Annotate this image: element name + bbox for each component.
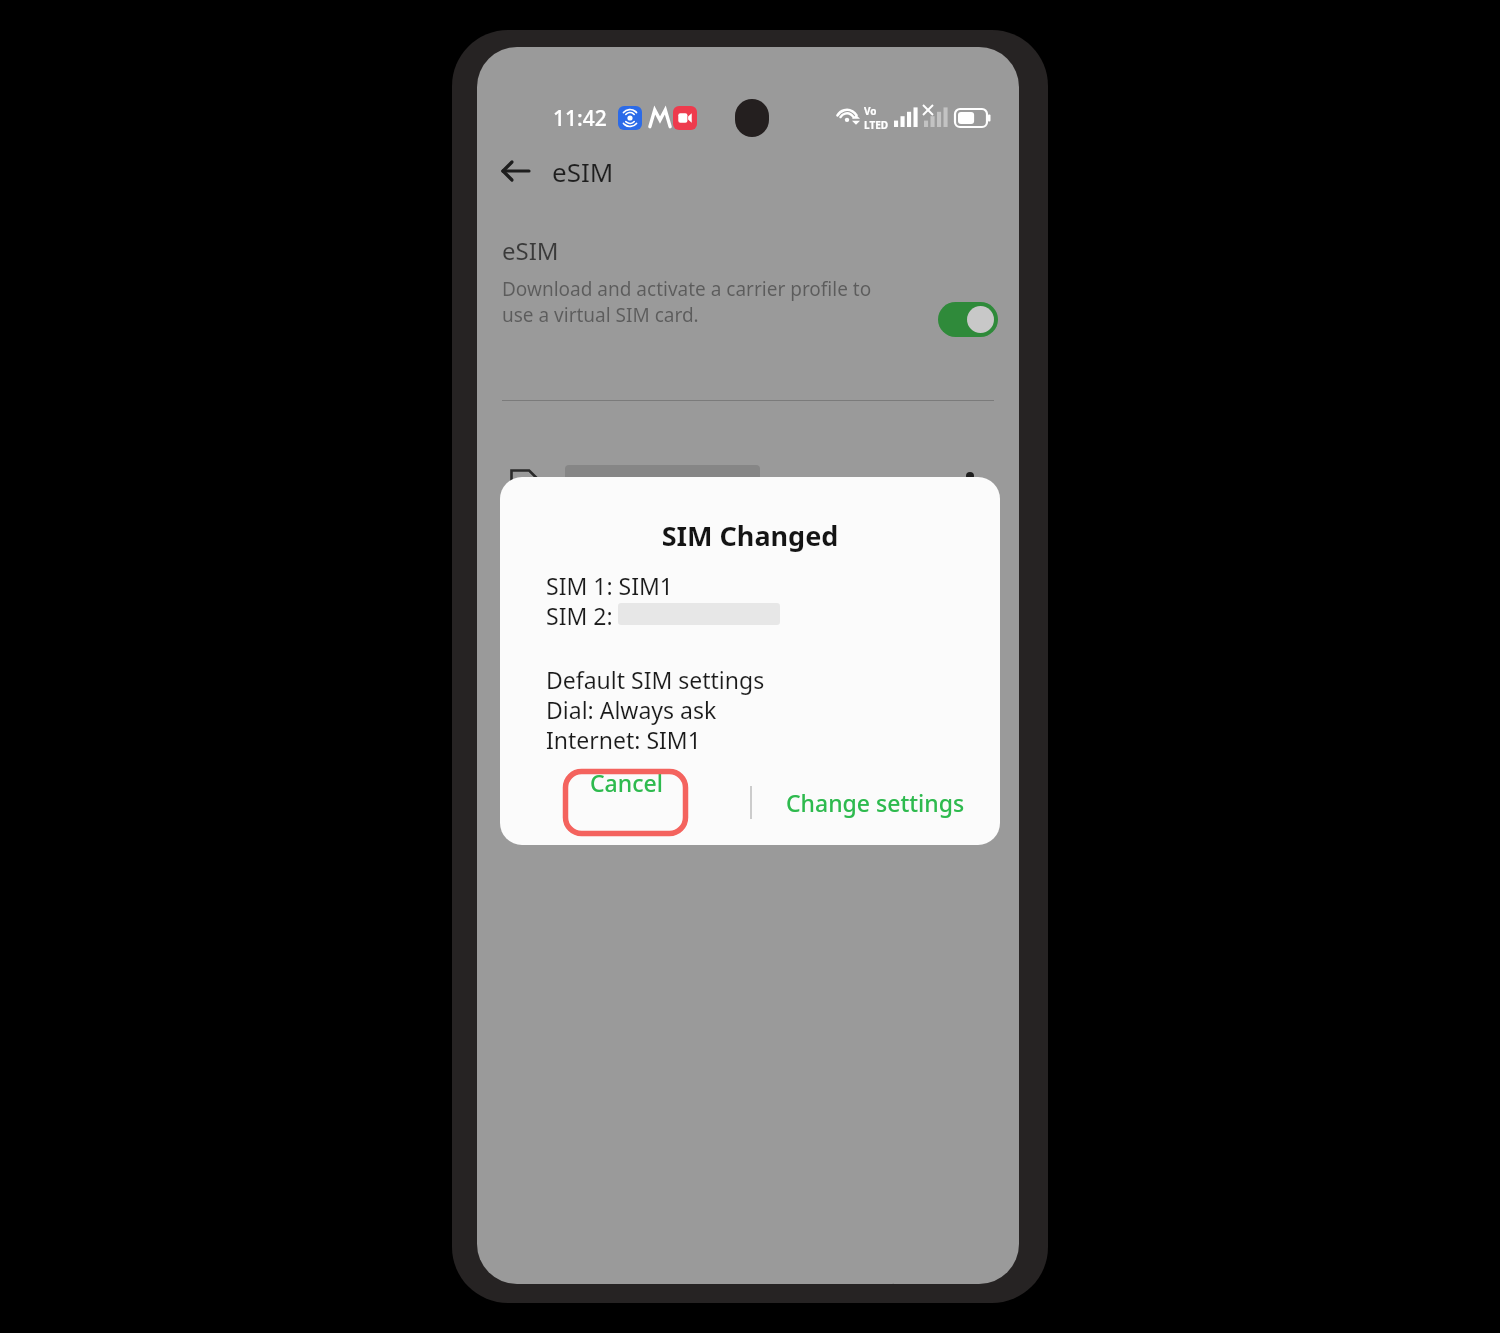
staticText: eSIM xyxy=(502,234,559,267)
staticText: LTED xyxy=(864,118,889,132)
button[interactable]: eSIM toggle xyxy=(938,302,998,337)
button[interactable]: More options xyxy=(947,463,993,509)
staticText: SIM Changed xyxy=(500,517,1000,554)
staticText: eSIM xyxy=(552,154,614,189)
staticText: Default SIM settings xyxy=(546,664,765,695)
button[interactable]: Back xyxy=(501,143,614,199)
button[interactable]: eSIM xyxy=(477,222,1019,316)
staticText: SIM 1: SIM1 xyxy=(546,570,674,601)
button[interactable]: Change settings xyxy=(780,780,970,825)
staticText: Change settings xyxy=(786,787,965,818)
button[interactable]: Enabled xyxy=(477,447,1019,535)
staticText: Dial: Always ask xyxy=(546,694,717,725)
staticText: SIM 2: xyxy=(546,600,613,631)
staticText: Download and activate a carrier profile … xyxy=(502,276,902,328)
staticText: Cancel xyxy=(590,767,663,798)
button[interactable]: Cancel xyxy=(546,760,706,805)
staticText: Internet: SIM1 xyxy=(546,724,701,755)
staticText: Vo xyxy=(864,104,877,118)
staticText: 11:42 xyxy=(553,104,607,133)
